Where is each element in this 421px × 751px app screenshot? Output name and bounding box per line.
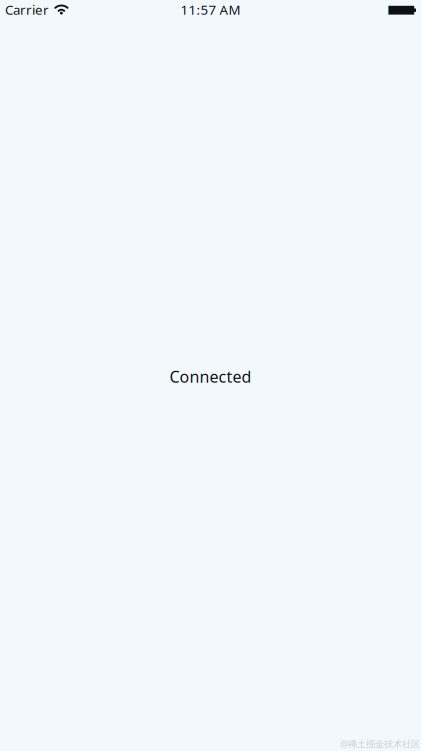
staticText: Connected xyxy=(169,366,251,387)
staticText: 11:57 AM xyxy=(180,1,240,18)
staticText: Carrier xyxy=(5,1,49,18)
staticText: @稀土掘金技术社区 xyxy=(340,738,420,750)
